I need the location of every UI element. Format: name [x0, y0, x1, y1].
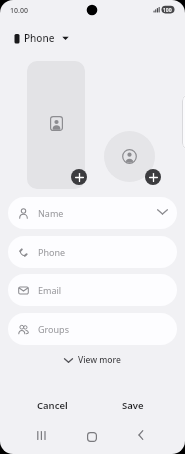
button[interactable]: Email	[8, 274, 177, 306]
button[interactable]	[81, 426, 103, 448]
button[interactable]: Phone	[14, 31, 69, 45]
staticText: Phone	[24, 31, 55, 45]
button[interactable]	[130, 424, 152, 446]
staticText: Phone	[38, 246, 66, 258]
button[interactable]: Cancel	[22, 395, 83, 415]
button[interactable]: View more	[0, 352, 185, 368]
button[interactable]: Phone	[8, 236, 177, 268]
button[interactable]	[104, 131, 155, 182]
staticText: View more	[78, 354, 121, 366]
staticText: Email	[38, 284, 62, 296]
button[interactable]	[71, 169, 87, 185]
staticText: Save	[122, 399, 144, 412]
staticText: 10.00	[10, 6, 28, 16]
staticText: 100	[163, 7, 172, 14]
button[interactable]: Save	[103, 395, 163, 415]
button[interactable]: Groups	[8, 313, 177, 345]
staticText: Groups	[38, 323, 69, 335]
button[interactable]	[145, 169, 161, 185]
button[interactable]	[30, 424, 52, 446]
button[interactable]	[27, 61, 85, 189]
staticText: Name	[38, 207, 64, 219]
button[interactable]: Name	[8, 197, 177, 229]
staticText: Cancel	[37, 399, 68, 412]
